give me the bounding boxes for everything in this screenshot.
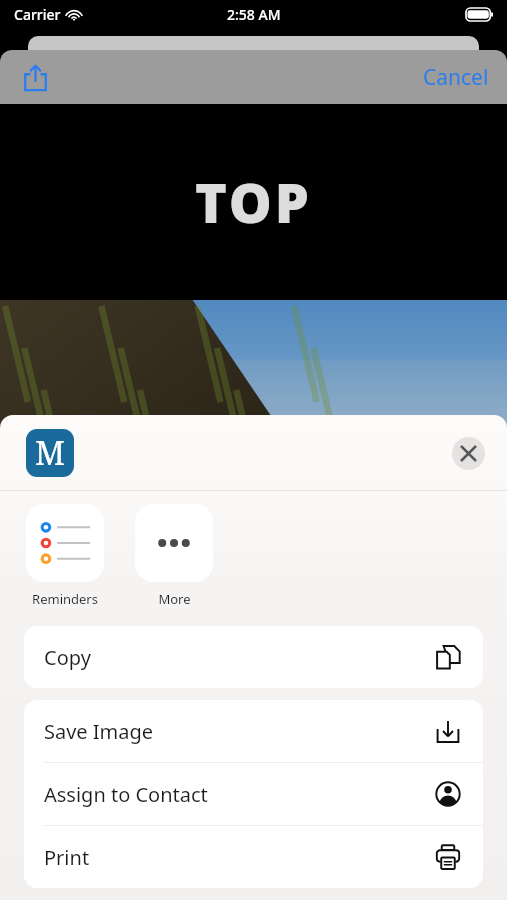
button[interactable]: Copy xyxy=(24,626,483,688)
staticText: TOP xyxy=(195,165,312,239)
staticText: Copy xyxy=(44,644,91,671)
button[interactable]: Cancel xyxy=(413,55,499,100)
staticText: More xyxy=(158,590,191,608)
staticText: M xyxy=(35,431,66,475)
button[interactable]: Close xyxy=(452,437,485,470)
button[interactable]: Save Image xyxy=(24,700,483,762)
staticText: Print xyxy=(44,844,90,871)
staticText: Save Image xyxy=(44,718,154,745)
staticText: Reminders xyxy=(32,590,98,608)
staticText: 2:58 AM xyxy=(227,5,281,24)
button[interactable]: M xyxy=(26,429,74,477)
button[interactable]: Assign to Contact xyxy=(24,763,483,825)
staticText: Assign to Contact xyxy=(44,781,208,808)
staticText: Carrier xyxy=(14,5,61,24)
button[interactable]: Share xyxy=(12,54,58,100)
button[interactable]: Reminders xyxy=(26,504,104,608)
button[interactable]: More xyxy=(135,504,213,608)
staticText: Cancel xyxy=(423,63,489,92)
button[interactable]: Print xyxy=(24,826,483,888)
